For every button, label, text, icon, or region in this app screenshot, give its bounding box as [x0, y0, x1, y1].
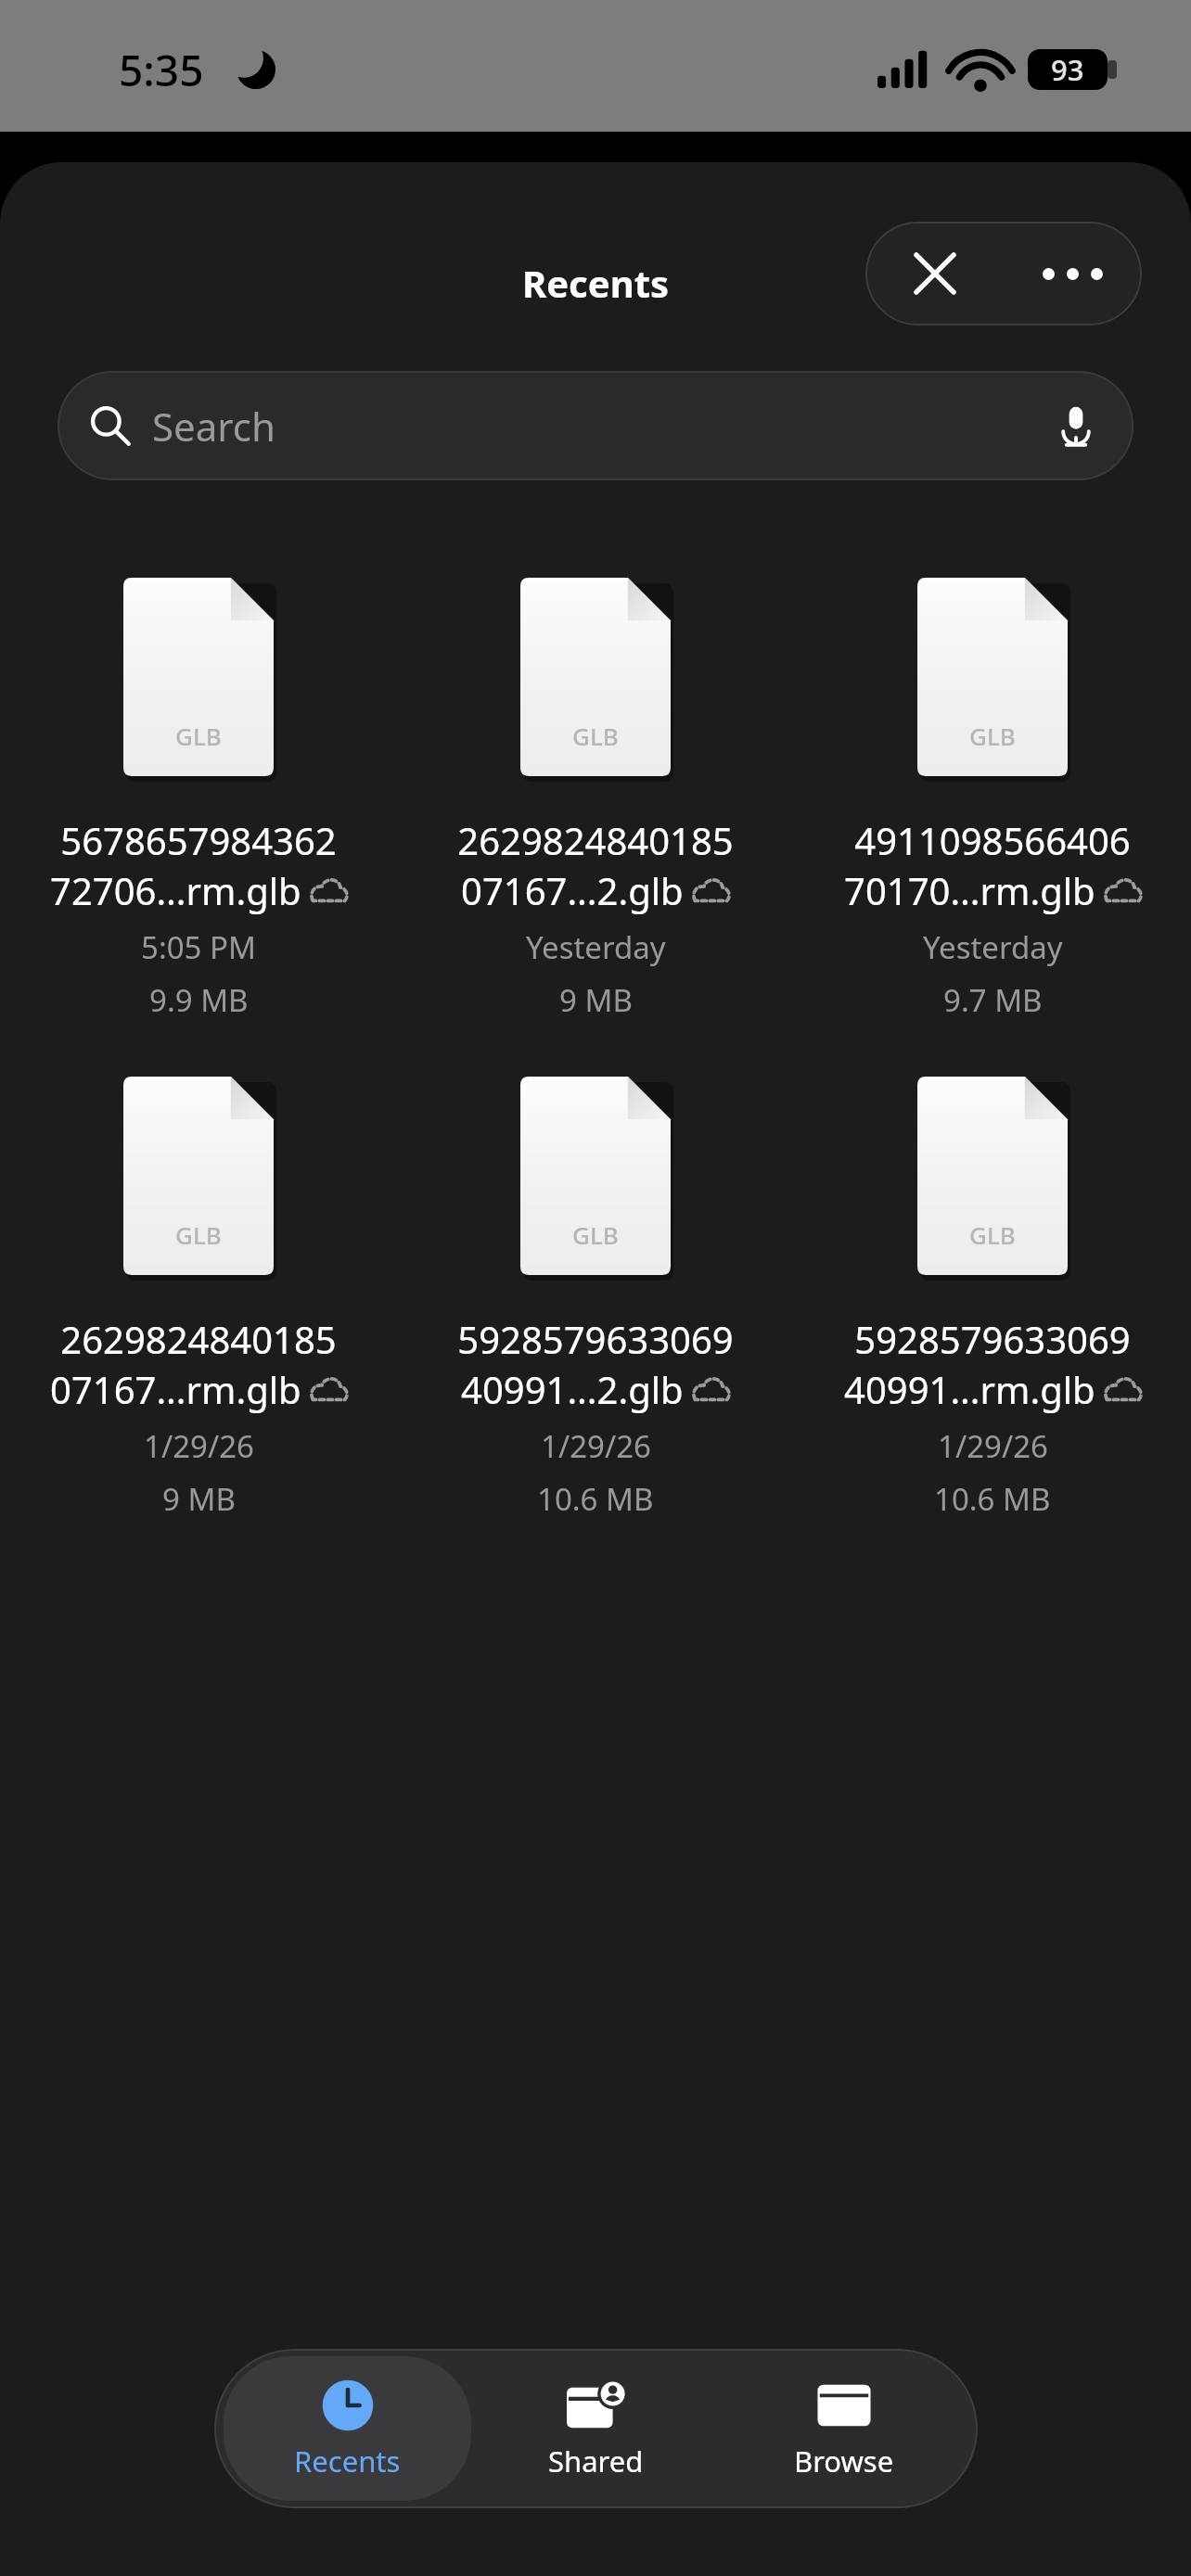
staticText: Browse: [794, 2442, 894, 2480]
staticText: GLB: [572, 1218, 619, 1251]
staticText: Yesterday: [526, 926, 666, 968]
staticText: 70170...rm.glb: [844, 865, 1095, 915]
button[interactable]: GLB: [397, 1077, 794, 1520]
staticText: 9.9 MB: [149, 979, 249, 1021]
button[interactable]: GLB: [794, 1077, 1191, 1520]
staticText: 5:35: [119, 41, 204, 99]
button[interactable]: GLB: [397, 578, 794, 1021]
staticText: 07167...rm.glb: [50, 1364, 301, 1414]
staticText: 1/29/26: [144, 1425, 254, 1467]
staticText: 2629824840185: [60, 1314, 337, 1364]
staticText: Yesterday: [923, 926, 1063, 968]
staticText: 9 MB: [162, 1478, 236, 1520]
staticText: 10.6 MB: [537, 1478, 654, 1520]
staticText: GLB: [572, 720, 619, 752]
staticText: 4911098566406: [854, 815, 1131, 865]
staticText: Search: [152, 400, 275, 453]
button[interactable]: Browse: [720, 2356, 968, 2501]
staticText: GLB: [175, 720, 222, 752]
staticText: Shared: [548, 2442, 644, 2480]
button[interactable]: GLB: [0, 578, 397, 1021]
staticText: 9.7 MB: [943, 979, 1043, 1021]
staticText: Recents: [294, 2442, 401, 2480]
staticText: 1/29/26: [541, 1425, 651, 1467]
button[interactable]: Shared: [471, 2356, 720, 2501]
button[interactable]: Voice search: [1050, 400, 1102, 452]
staticText: 40991...2.glb: [461, 1364, 684, 1414]
staticText: 5678657984362: [60, 815, 337, 865]
button[interactable]: Recents: [224, 2356, 471, 2501]
staticText: 5928579633069: [457, 1314, 734, 1364]
staticText: 5:05 PM: [141, 926, 256, 968]
button[interactable]: Search: [58, 371, 1133, 480]
staticText: 72706...rm.glb: [50, 865, 301, 915]
staticText: 2629824840185: [457, 815, 734, 865]
staticText: GLB: [175, 1218, 222, 1251]
staticText: Recents: [522, 258, 670, 308]
staticText: 9 MB: [559, 979, 633, 1021]
staticText: GLB: [969, 720, 1016, 752]
staticText: 93: [1051, 50, 1084, 89]
button[interactable]: Close: [865, 222, 1004, 325]
staticText: 1/29/26: [938, 1425, 1048, 1467]
staticText: 07167...2.glb: [461, 865, 684, 915]
staticText: 10.6 MB: [934, 1478, 1051, 1520]
staticText: 40991...rm.glb: [844, 1364, 1095, 1414]
button[interactable]: More options: [1004, 222, 1142, 325]
button[interactable]: GLB: [0, 1077, 397, 1520]
staticText: GLB: [969, 1218, 1016, 1251]
staticText: 5928579633069: [854, 1314, 1131, 1364]
button[interactable]: GLB: [794, 578, 1191, 1021]
